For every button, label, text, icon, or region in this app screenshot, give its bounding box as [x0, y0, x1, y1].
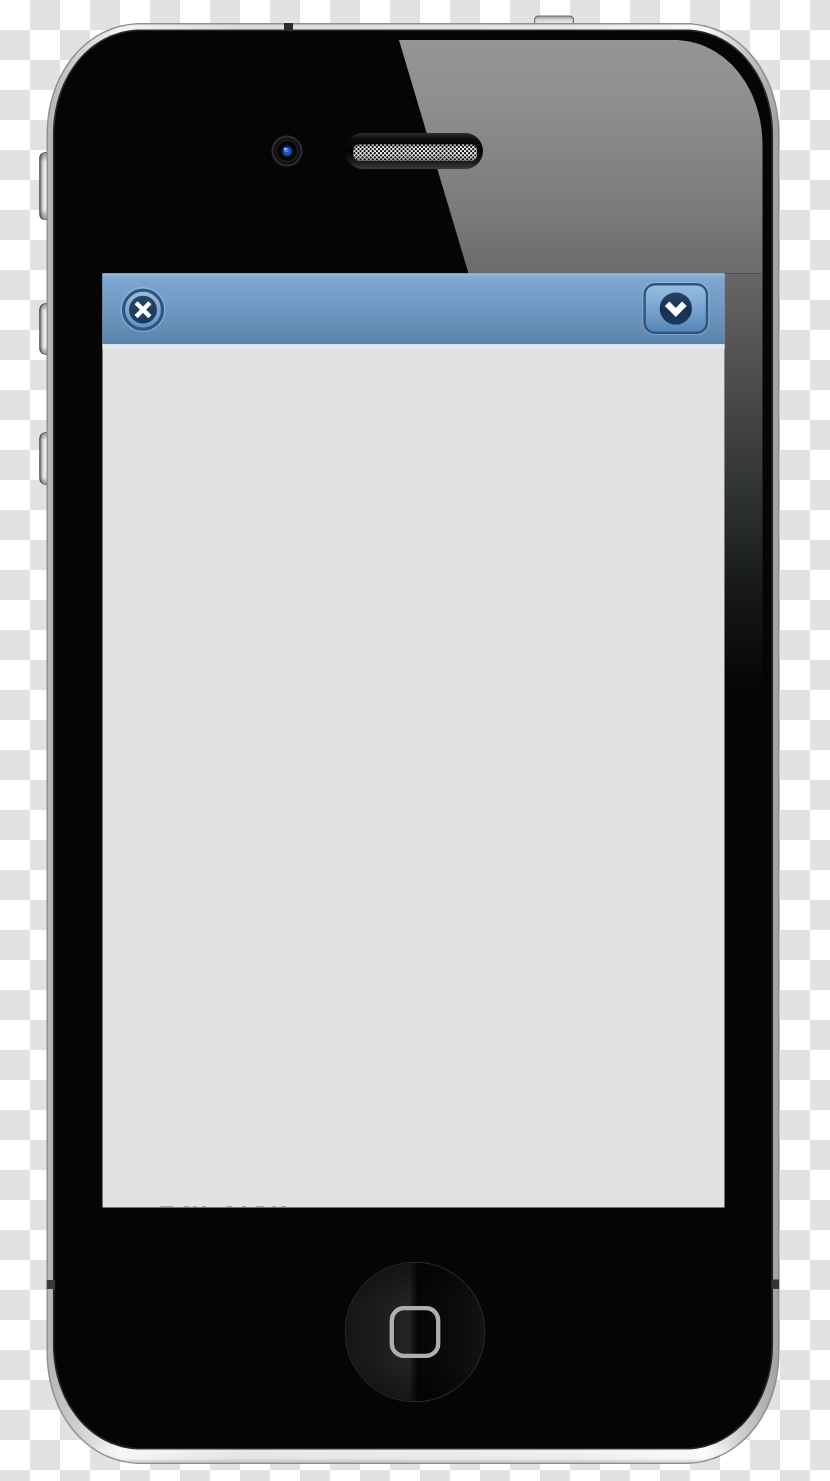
button[interactable]: Home	[346, 1263, 482, 1399]
button[interactable]: Close	[120, 286, 166, 332]
button[interactable]: Show more	[644, 283, 706, 335]
